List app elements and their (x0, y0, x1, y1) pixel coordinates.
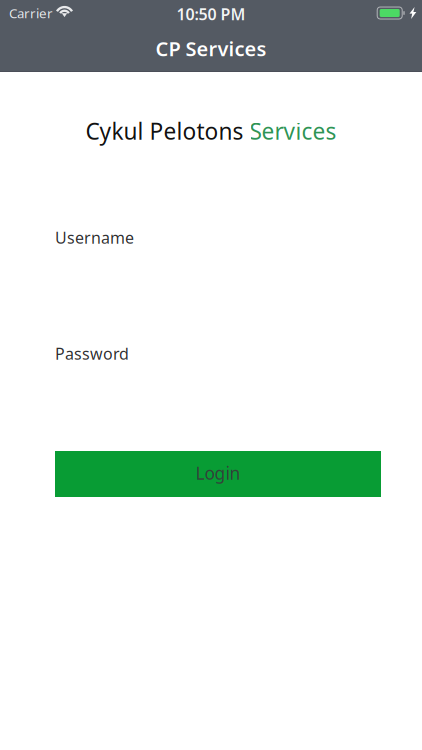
staticText: Cykul Pelotons (85, 116, 249, 146)
staticText: CP Services (155, 35, 266, 62)
staticText: Username (55, 227, 134, 248)
staticText: 10:50 PM (176, 3, 245, 25)
button[interactable]: Username (55, 227, 381, 285)
button[interactable]: Password (55, 343, 381, 401)
staticText: Carrier (9, 4, 53, 22)
staticText: Services (249, 116, 336, 146)
button[interactable]: Login (55, 451, 381, 497)
staticText: Login (195, 461, 240, 484)
staticText: Password (55, 343, 129, 364)
